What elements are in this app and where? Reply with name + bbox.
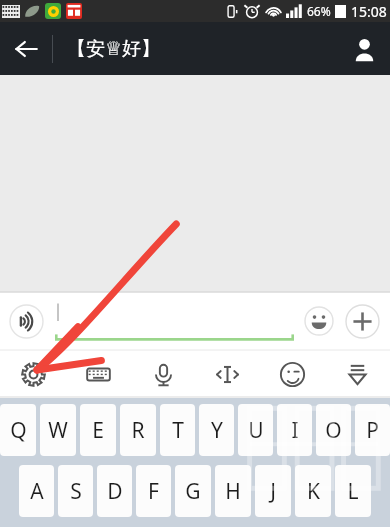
button[interactable]: Move cursor bbox=[204, 351, 250, 397]
staticText: G bbox=[185, 477, 201, 506]
button[interactable]: D bbox=[97, 465, 132, 517]
staticText: Y bbox=[211, 416, 223, 445]
button[interactable]: Keyboard layout bbox=[75, 351, 121, 397]
button[interactable]: G bbox=[175, 465, 211, 517]
button[interactable]: T bbox=[160, 404, 195, 456]
button[interactable]: More options bbox=[341, 300, 383, 342]
button[interactable]: Q bbox=[0, 404, 36, 456]
staticText: I bbox=[291, 416, 299, 445]
button[interactable]: Profile bbox=[338, 23, 390, 75]
button[interactable]: E bbox=[80, 404, 116, 456]
staticText: T bbox=[172, 416, 184, 445]
staticText: 66% bbox=[307, 3, 331, 19]
staticText: 【安♕好】 bbox=[67, 37, 161, 61]
button[interactable]: A bbox=[19, 465, 54, 517]
staticText: 15:08 bbox=[351, 2, 387, 21]
button[interactable]: Y bbox=[199, 404, 234, 456]
staticText: H bbox=[225, 477, 241, 506]
button[interactable]: Back bbox=[0, 23, 52, 75]
staticText: W bbox=[48, 416, 68, 445]
button[interactable]: Hide keyboard bbox=[334, 351, 380, 397]
staticText: A bbox=[30, 477, 44, 506]
button[interactable]: Voice input bbox=[7, 302, 45, 340]
staticText: O bbox=[325, 416, 342, 445]
button[interactable]: W bbox=[40, 404, 76, 456]
staticText: L bbox=[347, 477, 359, 506]
staticText: S bbox=[70, 477, 82, 506]
button[interactable]: F bbox=[136, 465, 171, 517]
staticText: K bbox=[307, 477, 320, 506]
staticText: R bbox=[131, 416, 145, 445]
button[interactable]: U bbox=[238, 404, 273, 456]
button[interactable]: Settings bbox=[10, 351, 56, 397]
staticText: Q bbox=[10, 416, 27, 445]
button[interactable]: Stickers bbox=[269, 351, 315, 397]
button[interactable]: K bbox=[295, 465, 331, 517]
button[interactable]: L bbox=[335, 465, 371, 517]
button[interactable]: P bbox=[355, 404, 390, 456]
staticText: E bbox=[92, 416, 104, 445]
button[interactable]: O bbox=[316, 404, 351, 456]
staticText: J bbox=[270, 477, 276, 506]
staticText: F bbox=[148, 477, 159, 506]
button[interactable]: I bbox=[277, 404, 312, 456]
button[interactable]: Voice input bbox=[140, 351, 186, 397]
button[interactable]: R bbox=[120, 404, 156, 456]
staticText: U bbox=[248, 416, 264, 445]
button[interactable] bbox=[55, 298, 294, 344]
button[interactable]: J bbox=[255, 465, 291, 517]
staticText: D bbox=[107, 477, 123, 506]
staticText: P bbox=[366, 416, 379, 445]
button[interactable]: H bbox=[215, 465, 251, 517]
button[interactable]: Emoji bbox=[300, 302, 338, 340]
button[interactable]: S bbox=[58, 465, 93, 517]
